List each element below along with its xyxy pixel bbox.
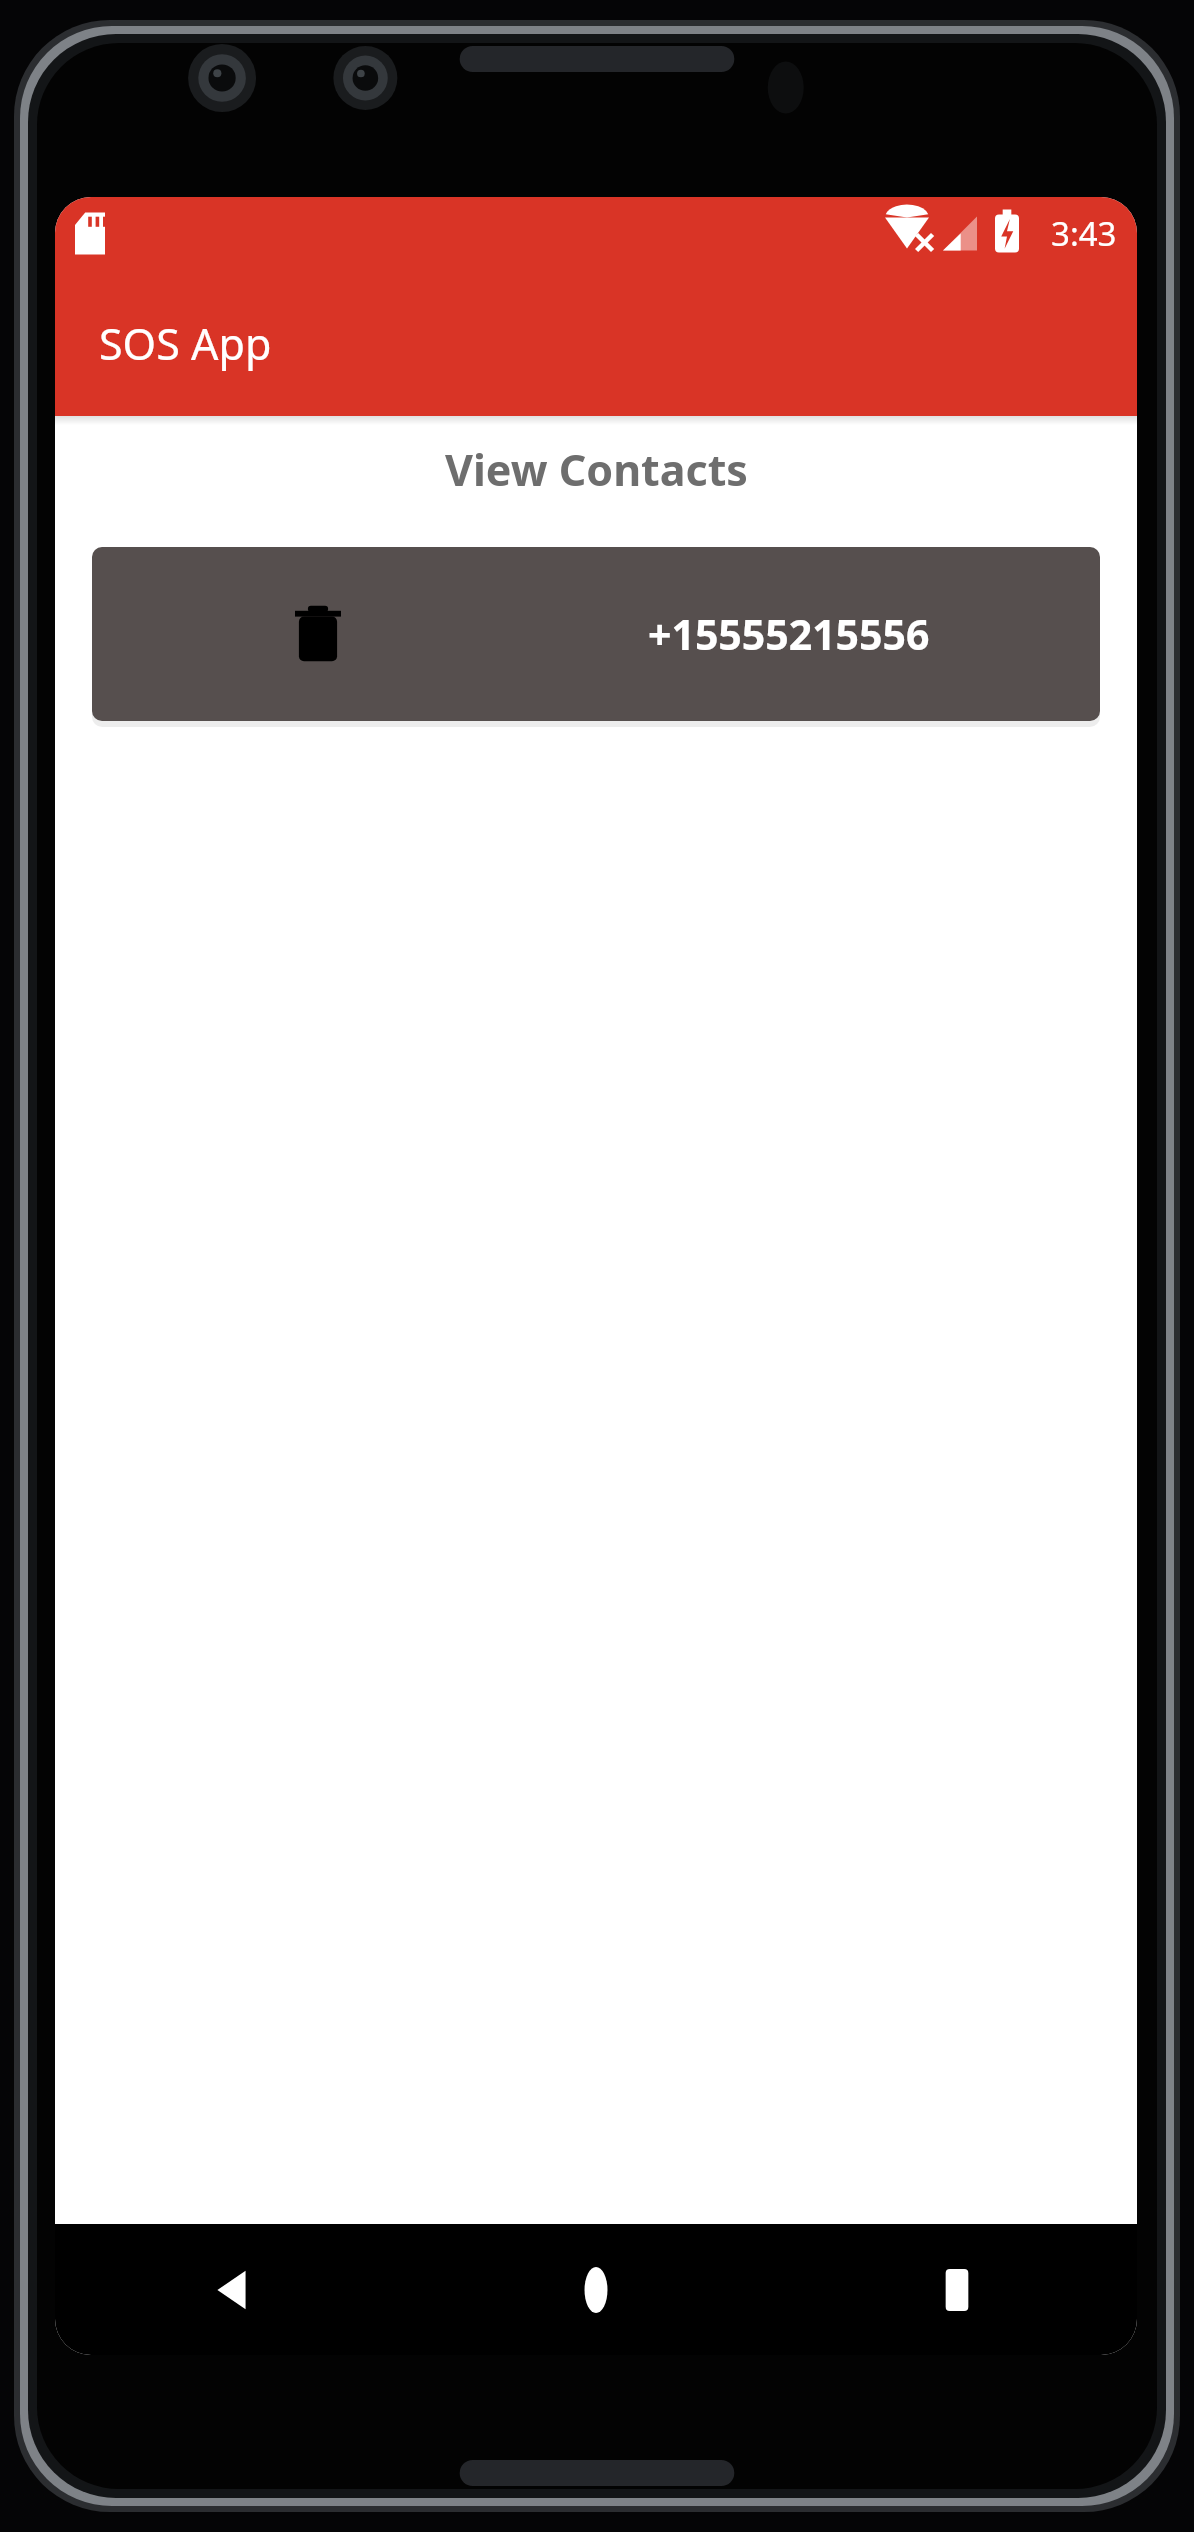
button[interactable]: Recent apps	[776, 2224, 1137, 2355]
button[interactable]: Home	[415, 2224, 776, 2355]
staticText: SOS App	[99, 314, 272, 373]
other: Delete contact	[92, 547, 544, 721]
staticText: View Contacts	[445, 440, 748, 499]
button[interactable]: Back	[55, 2224, 415, 2355]
staticText: +15555215556	[648, 606, 930, 662]
staticText: 3:43	[1051, 211, 1117, 256]
button[interactable]: Delete contact	[92, 547, 1100, 721]
